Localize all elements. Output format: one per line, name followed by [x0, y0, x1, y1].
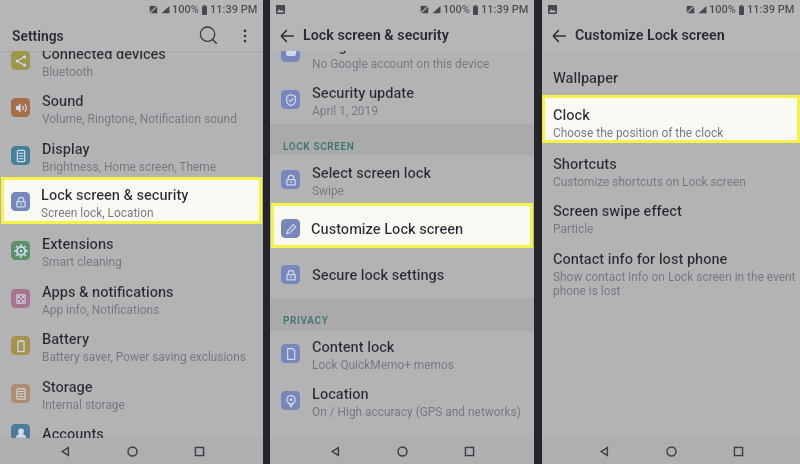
staticText: Lock screen & security [41, 186, 189, 203]
button[interactable]: Search [197, 24, 221, 48]
button[interactable]: Lock screen & security [4, 180, 259, 220]
staticText: Clock [553, 106, 590, 123]
button[interactable]: Security update [270, 78, 534, 118]
staticText: Secure lock settings [312, 266, 445, 283]
staticText: Particle [553, 222, 594, 236]
button[interactable]: Content lock [270, 332, 534, 372]
button[interactable]: Back [276, 25, 298, 47]
button[interactable]: Back [593, 440, 615, 462]
button[interactable]: Contact info for lost phone [542, 244, 800, 302]
button[interactable]: Screen swipe effect [542, 196, 800, 237]
staticText: Customize Lock screen [311, 220, 464, 237]
button[interactable]: Select screen lock [270, 158, 534, 198]
staticText: Sound [42, 92, 84, 109]
staticText: Show contact info on Lock screen in the … [553, 270, 796, 284]
staticText: Bluetooth [42, 65, 93, 79]
staticText: Contact info for lost phone [553, 250, 728, 267]
button[interactable]: Home [391, 440, 413, 462]
staticText: Internal storage [42, 398, 125, 412]
button[interactable]: Back [324, 440, 346, 462]
staticText: Brightness, Home screen, Theme [42, 160, 217, 174]
staticText: Volume, Ringtone, Notification sound [42, 112, 237, 126]
button[interactable]: Storage [0, 372, 263, 412]
staticText: Wallpaper [553, 69, 619, 86]
button[interactable]: Wallpaper [542, 63, 800, 89]
staticText: 11:39 PM [747, 3, 795, 16]
staticText: Storage [42, 378, 93, 395]
staticText: phone is lost [553, 284, 621, 298]
button[interactable]: Accounts [0, 419, 263, 438]
button[interactable]: Apps & notifications [0, 277, 263, 317]
button[interactable]: Connected devices [0, 51, 263, 79]
button[interactable]: Clock [545, 100, 797, 141]
button[interactable]: Google account [270, 51, 534, 71]
staticText: Connected devices [42, 51, 166, 62]
button[interactable]: Secure lock settings [270, 260, 534, 288]
staticText: Content lock [312, 338, 395, 355]
button[interactable]: Sound [0, 86, 263, 126]
button[interactable]: Shortcuts [542, 149, 800, 190]
button[interactable]: Home [660, 440, 682, 462]
staticText: Battery [42, 330, 90, 347]
staticText: On / High accuracy (GPS and networks) [312, 405, 521, 419]
staticText: LOCK SCREEN [283, 141, 355, 153]
staticText: Smart cleaning [42, 255, 122, 269]
staticText: Choose the position of the clock [553, 126, 724, 140]
staticText: App info, Notifications [42, 303, 160, 317]
button[interactable]: Recents [188, 440, 210, 462]
staticText: Lock QuickMemo+ memos [312, 358, 454, 372]
button[interactable]: Back [548, 25, 570, 47]
staticText: Swipe [312, 184, 344, 198]
staticText: Select screen lock [312, 164, 432, 181]
staticText: 11:39 PM [210, 3, 258, 16]
staticText: Extensions [42, 235, 114, 252]
staticText: 100% [172, 3, 199, 16]
button[interactable]: Home [121, 440, 143, 462]
staticText: April 1, 2019 [312, 104, 378, 118]
button[interactable]: Recents [727, 440, 749, 462]
button[interactable]: Recents [458, 440, 480, 462]
staticText: Location [312, 385, 369, 402]
staticText: Google account [312, 51, 415, 54]
staticText: PRIVACY [283, 315, 329, 327]
staticText: Accounts [42, 425, 104, 438]
staticText: Screen swipe effect [553, 202, 682, 219]
staticText: Settings [12, 28, 64, 44]
staticText: Lock screen & security [303, 27, 449, 44]
button[interactable]: Back [54, 440, 76, 462]
staticText: Shortcuts [553, 155, 617, 172]
staticText: 100% [443, 3, 470, 16]
button[interactable]: Battery [0, 324, 263, 364]
staticText: No Google account on this device [312, 57, 490, 71]
button[interactable]: More options [233, 24, 257, 48]
button[interactable]: Customize Lock screen [274, 214, 530, 242]
staticText: Screen lock, Location [41, 206, 154, 220]
staticText: Customize shortcuts on Lock screen [553, 175, 746, 189]
staticText: 11:39 PM [481, 3, 529, 16]
staticText: Apps & notifications [42, 283, 174, 300]
button[interactable]: Location [270, 379, 534, 419]
button[interactable]: Extensions [0, 229, 263, 269]
staticText: 100% [709, 3, 736, 16]
staticText: Customize Lock screen [575, 27, 725, 44]
staticText: Battery saver, Power saving exclusions [42, 350, 246, 364]
button[interactable]: Display [0, 134, 263, 174]
staticText: Display [42, 140, 90, 157]
staticText: Security update [312, 84, 414, 101]
